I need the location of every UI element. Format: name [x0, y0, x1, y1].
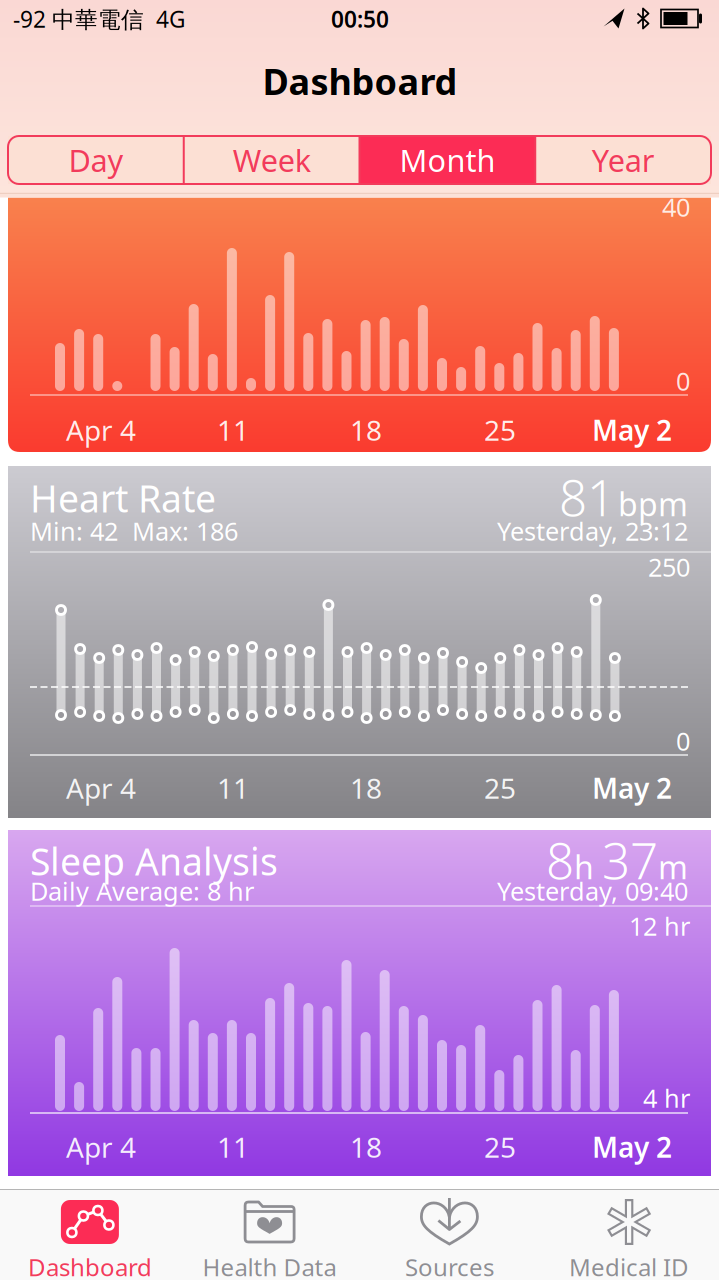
staticText: 18: [350, 1128, 382, 1166]
staticText: Sleep Analysis: [30, 836, 278, 886]
staticText: Min: 42 Max: 186: [30, 514, 238, 548]
staticText: 18: [350, 411, 382, 449]
staticText: -92 中華電信 4G: [13, 4, 186, 34]
staticText: Month: [399, 140, 495, 180]
staticText: 11: [217, 411, 249, 449]
staticText: Week: [233, 140, 311, 180]
staticText: 40: [662, 190, 690, 224]
button[interactable]: Month: [359, 136, 535, 184]
staticText: Yesterday, 09:40: [497, 874, 688, 908]
staticText: 0: [676, 364, 690, 398]
staticText: Apr 4: [66, 1128, 136, 1166]
staticText: 00:50: [331, 4, 389, 34]
staticText: 18: [350, 769, 382, 807]
staticText: Dashboard: [28, 1251, 152, 1280]
button[interactable]: Health Data: [183, 1190, 357, 1280]
staticText: 81: [559, 464, 615, 530]
staticText: 250: [648, 550, 690, 584]
button[interactable]: Medical ID: [542, 1190, 716, 1280]
staticText: bpm: [618, 482, 688, 525]
button[interactable]: Sleep Analysis: [8, 830, 711, 1176]
staticText: 12 hr: [629, 909, 690, 943]
button[interactable]: Heart Rate: [8, 466, 711, 818]
staticText: 8: [546, 827, 574, 893]
button[interactable]: Steps: [8, 197, 711, 452]
staticText: May 2: [592, 769, 672, 807]
staticText: h: [574, 845, 602, 888]
staticText: 11: [217, 769, 249, 807]
staticText: Yesterday, 23:12: [497, 514, 688, 548]
staticText: Health Data: [203, 1251, 337, 1280]
staticText: 0: [676, 724, 690, 758]
staticText: Apr 4: [66, 769, 136, 807]
staticText: Heart Rate: [30, 473, 216, 523]
staticText: Daily Average: 8 hr: [30, 874, 254, 908]
button[interactable]: Sources: [362, 1190, 536, 1280]
staticText: 37: [602, 827, 658, 893]
staticText: Year: [592, 140, 655, 180]
staticText: May 2: [592, 1128, 672, 1166]
staticText: m: [658, 845, 688, 888]
staticText: 4 hr: [643, 1081, 690, 1115]
staticText: Medical ID: [569, 1251, 689, 1280]
staticText: 25: [484, 769, 516, 807]
staticText: May 2: [592, 411, 672, 449]
staticText: 25: [484, 411, 516, 449]
staticText: Day: [68, 140, 123, 180]
button[interactable]: Dashboard: [3, 1190, 177, 1280]
button[interactable]: Day: [8, 136, 184, 184]
staticText: Sources: [405, 1251, 494, 1280]
button[interactable]: Week: [184, 136, 360, 184]
button[interactable]: Year: [535, 136, 711, 184]
staticText: 11: [217, 1128, 249, 1166]
staticText: Apr 4: [66, 411, 136, 449]
staticText: Dashboard: [262, 57, 457, 105]
staticText: 25: [484, 1128, 516, 1166]
